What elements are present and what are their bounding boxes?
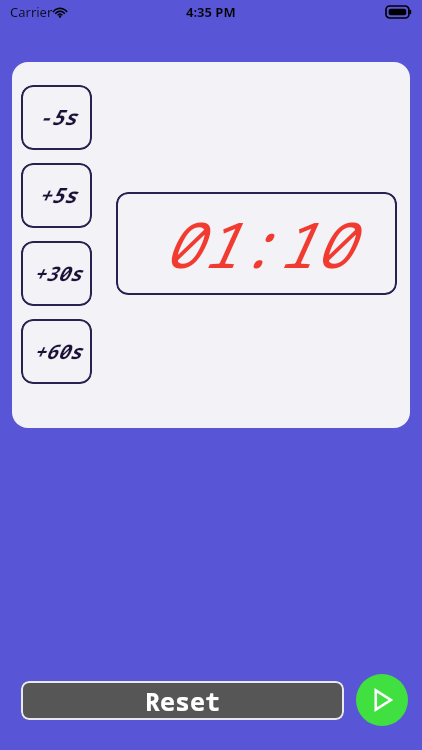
button[interactable]: +30s [21, 241, 92, 306]
staticText: +5s [38, 181, 76, 210]
button[interactable]: Reset [21, 681, 344, 720]
staticText: +30s [33, 260, 81, 287]
staticText: 4:35 PM [186, 3, 236, 21]
button[interactable]: 01:10 [116, 192, 397, 295]
button[interactable]: Start timer [356, 674, 408, 726]
staticText: Carrier [10, 3, 53, 21]
button[interactable]: +60s [21, 319, 92, 384]
staticText: 01:10 [162, 201, 351, 287]
staticText: +60s [33, 338, 81, 365]
staticText: -5s [38, 103, 76, 132]
button[interactable]: +5s [21, 163, 92, 228]
staticText: Reset [145, 684, 221, 718]
button[interactable]: -5s [21, 85, 92, 150]
